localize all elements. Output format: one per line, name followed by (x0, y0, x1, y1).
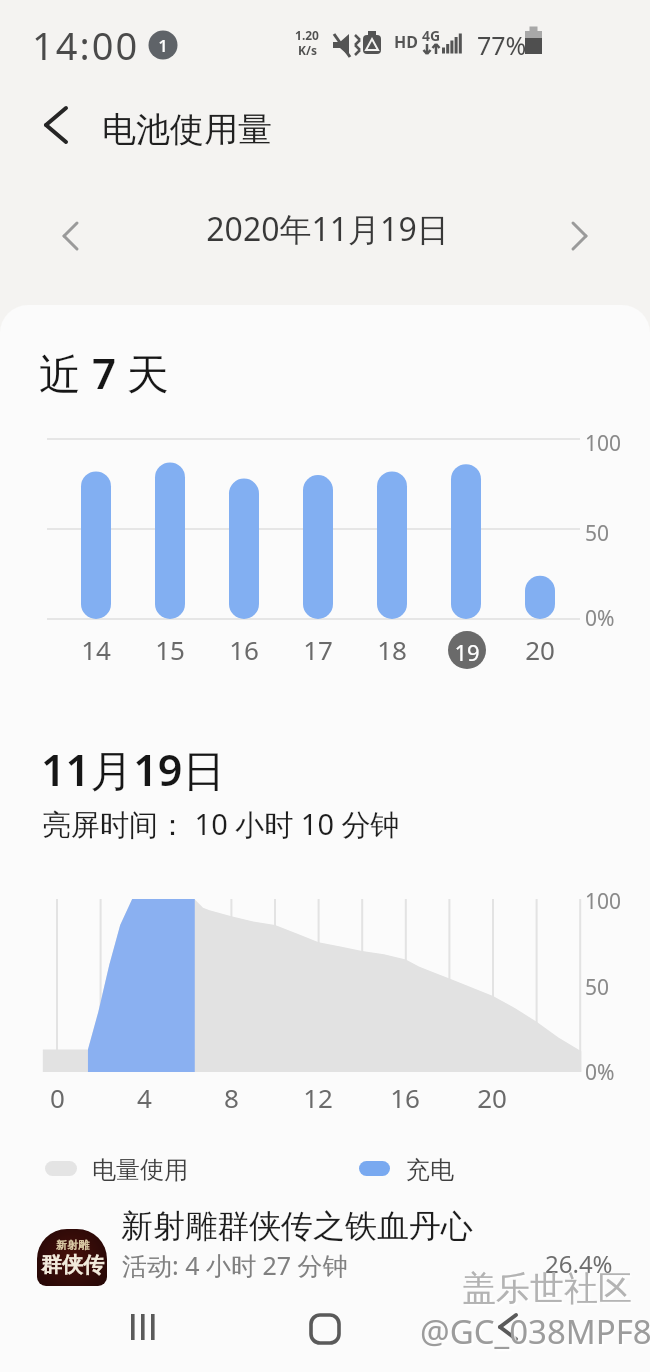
staticText: 群侠传 (41, 1252, 104, 1278)
staticText: 充电 (406, 1155, 454, 1185)
staticText: 1 (158, 34, 168, 57)
staticText: 0% (585, 604, 615, 633)
button[interactable] (111, 1305, 175, 1355)
staticText: 4G (422, 26, 441, 45)
staticText: 近 7 天 (39, 344, 169, 401)
staticText: 19 (454, 637, 480, 667)
staticText: HD (394, 31, 418, 53)
staticText: 100 (585, 887, 622, 916)
staticText: 20 (477, 1080, 507, 1115)
staticText: 8 (224, 1080, 239, 1115)
staticText: 电池使用量 (102, 108, 272, 151)
staticText: 活动: 4 小时 27 分钟 (122, 1248, 348, 1282)
staticText: 50 (585, 973, 610, 1002)
staticText: 14 (81, 632, 111, 667)
button[interactable]: 新射雕 (24, 1206, 626, 1296)
staticText: 亮屏时间： 10 小时 10 分钟 (42, 804, 400, 844)
staticText: 16 (390, 1080, 420, 1115)
staticText: 新射雕群侠传之铁血丹心 (121, 1206, 473, 1246)
staticText: 盖乐世社区 (462, 1267, 632, 1310)
staticText: 2020年11月19日 (206, 207, 449, 251)
staticText: K/s (298, 42, 317, 58)
button[interactable] (476, 1305, 540, 1355)
staticText: 15 (155, 632, 185, 667)
staticText: 0% (585, 1058, 615, 1087)
staticText: 12 (303, 1080, 333, 1115)
staticText: @GC_038MPF8 (420, 1309, 650, 1354)
staticText: 1.20 (295, 27, 319, 43)
staticText: 14:00 (32, 19, 140, 71)
button[interactable] (48, 214, 92, 258)
staticText: 100 (585, 429, 622, 458)
staticText: 20 (525, 632, 555, 667)
staticText: 17 (303, 632, 333, 667)
staticText: 16 (229, 632, 259, 667)
button[interactable] (293, 1305, 357, 1355)
button[interactable] (558, 214, 602, 258)
staticText: 新射雕 (56, 1238, 89, 1252)
staticText: 18 (377, 632, 407, 667)
staticText: 4 (137, 1080, 152, 1115)
staticText: 50 (585, 519, 610, 548)
staticText: 电量使用 (92, 1155, 188, 1185)
staticText: 0 (50, 1080, 65, 1115)
staticText: 26.4% (545, 1247, 613, 1280)
staticText: 77% (477, 28, 527, 62)
staticText: 11月19日 (41, 740, 226, 799)
button[interactable] (34, 98, 80, 150)
